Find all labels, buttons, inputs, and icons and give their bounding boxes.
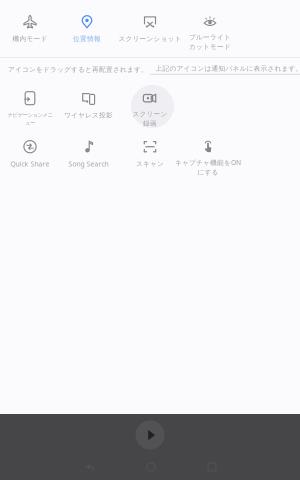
- staticText: 機内モード: [12, 35, 47, 43]
- staticText: ブルーライト: [189, 33, 231, 41]
- staticText: ワイヤレス投影: [64, 111, 113, 119]
- button[interactable]: 機内モード: [2, 7, 58, 51]
- staticText: Song Search: [68, 159, 108, 168]
- button[interactable]: スクリーンショット: [122, 7, 178, 51]
- button[interactable]: Quick Share: [2, 133, 58, 177]
- button[interactable]: ブルーライトカットモード: [182, 7, 238, 51]
- staticText: 上記のアイコンは通知パネルに表示されます。: [155, 64, 300, 73]
- button[interactable]: キャプチャ機能をONにする: [180, 133, 236, 177]
- staticText: ナビゲーションメニ: [7, 112, 52, 118]
- button[interactable]: スキャン: [122, 133, 178, 177]
- staticText: ュー: [25, 119, 35, 126]
- button[interactable]: 再生: [132, 417, 168, 453]
- button[interactable]: 位置情報: [59, 7, 115, 51]
- staticText: 位置情報: [73, 35, 101, 43]
- staticText: スキャン: [136, 160, 164, 168]
- button[interactable]: Song Search: [60, 133, 116, 177]
- staticText: 録画: [143, 119, 157, 128]
- button[interactable]: ナビゲーションメニュー: [2, 85, 58, 129]
- button[interactable]: ワイヤレス投影: [60, 85, 116, 129]
- button[interactable]: スクリーン録画: [122, 85, 178, 129]
- staticText: Quick Share: [10, 159, 49, 168]
- staticText: アイコンをドラッグすると再配置されます。: [8, 65, 148, 74]
- staticText: にする: [197, 168, 218, 176]
- staticText: カットモード: [189, 43, 231, 51]
- staticText: キャプチャ機能をON: [175, 158, 241, 167]
- staticText: スクリーンショット: [118, 35, 181, 43]
- staticText: スクリーン: [132, 110, 167, 118]
